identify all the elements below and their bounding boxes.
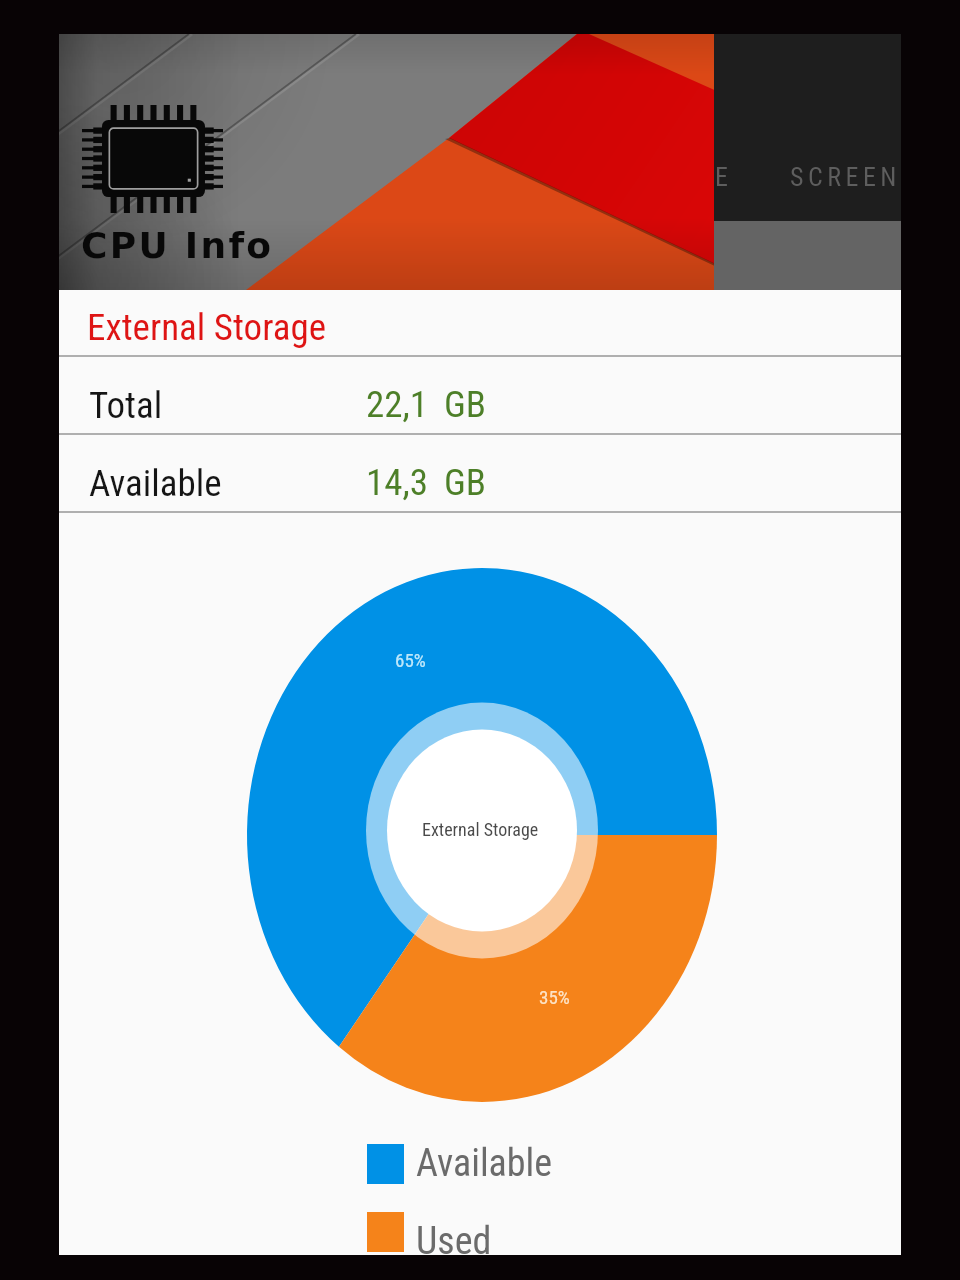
staticText: 22,1 (366, 383, 429, 426)
staticText: Available (89, 462, 222, 505)
other: CPU Info app icon (82, 105, 223, 213)
staticText: 65% (395, 649, 426, 671)
staticText: GB (444, 461, 487, 504)
staticText: 14,3 (366, 461, 429, 504)
button[interactable]: Storage tab (714, 34, 774, 221)
staticText: 35% (539, 986, 570, 1008)
staticText: E (715, 162, 732, 192)
button[interactable]: External Storage (59, 290, 901, 357)
staticText: External Storage (422, 819, 539, 840)
staticText: Used (416, 1219, 492, 1255)
staticText: External Storage (87, 306, 327, 349)
staticText: Total (89, 384, 163, 427)
button[interactable]: Available (59, 435, 901, 513)
staticText: Available (416, 1141, 553, 1186)
staticText: CPU Info (81, 225, 274, 267)
staticText: GB (444, 383, 487, 426)
button[interactable]: Total (59, 357, 901, 435)
button[interactable]: Screen tab (774, 34, 901, 221)
button[interactable]: Available (367, 1141, 553, 1186)
staticText: SCREEN (790, 162, 901, 192)
button[interactable]: Used (367, 1212, 492, 1255)
